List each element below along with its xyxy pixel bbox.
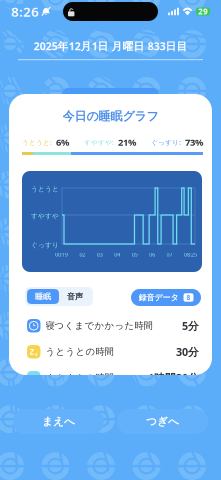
staticText: 06 [149, 251, 155, 258]
staticText: 2025年12月1日 月曜日 833日目 [33, 39, 187, 53]
button[interactable]: 睡眠 [27, 289, 59, 304]
staticText: Z [30, 346, 35, 357]
staticText: 07 [167, 251, 173, 258]
staticText: 03 [97, 251, 103, 258]
staticText: すやすや [31, 212, 59, 220]
staticText: 30分 [176, 345, 199, 359]
staticText: 8 [186, 293, 190, 302]
staticText: 寝つくまでかかった時間 [45, 320, 152, 331]
staticText: 1時間30分 [148, 371, 199, 385]
button[interactable]: まえへ [13, 409, 104, 434]
staticText: 21% [118, 136, 136, 148]
button[interactable]: 音声 [59, 289, 91, 304]
staticText: 04 [114, 251, 120, 258]
button[interactable]: Z [9, 339, 212, 364]
staticText: ぐっすり [31, 241, 59, 249]
staticText: 8:26 [11, 3, 39, 20]
staticText: 録音データ [138, 293, 178, 302]
staticText: うとうと [31, 185, 59, 193]
staticText: すやすや: [84, 138, 114, 147]
staticText: 今日の睡眠グラフ [62, 109, 158, 124]
staticText: すやすやの時間 [45, 372, 113, 383]
staticText: 08:25 [184, 251, 197, 258]
staticText: 音声 [67, 292, 83, 301]
staticText: 02 [79, 251, 85, 258]
staticText: 73% [185, 136, 203, 148]
staticText: うとうとの時間 [45, 346, 113, 357]
staticText: うとうと: [22, 138, 52, 147]
staticText: 05 [132, 251, 138, 258]
staticText: 6% [56, 136, 69, 148]
button[interactable]: 録音データ [131, 289, 201, 306]
button[interactable]: 寝つくまでかかった時間 [9, 313, 212, 338]
staticText: 5分 [182, 319, 199, 333]
staticText: まえへ [42, 415, 75, 428]
staticText: つぎへ [146, 415, 179, 428]
button[interactable]: すやすやの時間 [9, 365, 212, 390]
staticText: z [35, 350, 38, 357]
button[interactable]: つぎへ [117, 409, 208, 434]
staticText: 00:19 [55, 251, 68, 258]
staticText: 睡眠 [35, 292, 51, 301]
staticText: 29 [198, 6, 208, 17]
staticText: ぐっすり: [151, 138, 181, 147]
